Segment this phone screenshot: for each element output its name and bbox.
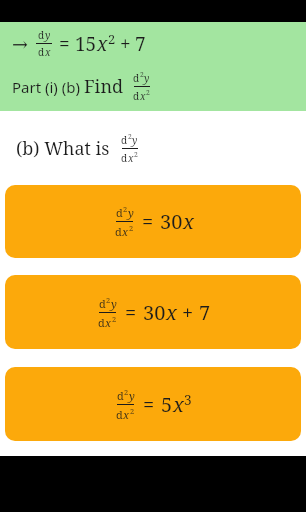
staticText: d (38, 28, 45, 42)
button[interactable]: d (5, 275, 301, 349)
staticText: d (115, 224, 122, 239)
staticText: = (142, 208, 154, 235)
button[interactable]: d (5, 367, 301, 441)
staticText: d (98, 315, 105, 330)
staticText: x (123, 407, 130, 422)
staticText: 3 (184, 390, 192, 409)
staticText: 2 (140, 70, 144, 79)
staticText: 2 (134, 150, 138, 159)
staticText: d (133, 89, 140, 103)
staticText: 2 (128, 132, 132, 141)
staticText: 7 (135, 31, 146, 57)
staticText: d (121, 151, 128, 165)
staticText: 2 (123, 204, 128, 214)
staticText: = (125, 299, 137, 326)
button[interactable]: d (5, 185, 301, 258)
staticText: x (173, 391, 184, 418)
staticText: x (105, 315, 112, 330)
staticText: Part (i) (b) (12, 77, 84, 97)
staticText: 2 (146, 88, 150, 97)
staticText: 30 (143, 299, 166, 326)
staticText: 30 (160, 208, 183, 235)
staticText: d (116, 205, 123, 220)
staticText: y (111, 296, 117, 311)
staticText: y (128, 205, 134, 220)
staticText: = (143, 391, 155, 418)
staticText: x (140, 89, 146, 103)
staticText: x (45, 45, 51, 59)
staticText: d (117, 388, 124, 403)
staticText: d (99, 296, 106, 311)
staticText: = (59, 31, 70, 57)
staticText: 2 (124, 387, 129, 397)
staticText: y (132, 133, 138, 147)
staticText: 2 (130, 406, 135, 416)
staticText: (b) What is (16, 136, 110, 161)
staticText: x (183, 208, 194, 235)
staticText: d (116, 407, 123, 422)
staticText: 2 (129, 223, 134, 233)
staticText: → (12, 33, 28, 55)
staticText: + (182, 299, 194, 326)
staticText: + (120, 31, 131, 57)
staticText: y (45, 28, 51, 42)
staticText: 2 (112, 314, 117, 324)
staticText: d (121, 133, 128, 147)
staticText: 2 (106, 295, 111, 305)
staticText: Find (84, 74, 124, 99)
staticText: x (166, 299, 177, 326)
staticText: x (97, 31, 108, 57)
staticText: d (133, 71, 140, 85)
staticText: y (144, 71, 150, 85)
staticText: 2 (108, 30, 116, 48)
staticText: d (38, 45, 45, 59)
staticText: y (129, 388, 135, 403)
staticText: 7 (199, 299, 211, 326)
staticText: 15 (75, 31, 97, 57)
staticText: x (128, 151, 134, 165)
staticText: x (122, 224, 129, 239)
staticText: 5 (161, 391, 173, 418)
